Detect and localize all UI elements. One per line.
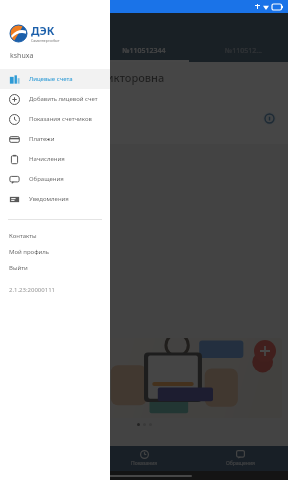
staticText: Самоэнергосбыт — [31, 38, 60, 43]
staticText: Показания счетчиков — [29, 115, 92, 123]
button[interactable]: Выйти — [0, 260, 110, 276]
button[interactable]: Успей оплату — [6, 338, 282, 418]
staticText: Выйти — [9, 264, 28, 272]
staticText: Контакты — [9, 232, 37, 240]
staticText: №110512344 — [122, 46, 166, 56]
button[interactable]: Начисления — [0, 149, 110, 169]
button[interactable]: Обращения — [0, 169, 110, 189]
staticText: Начисления — [29, 155, 65, 163]
button[interactable]: Обращения — [192, 446, 288, 471]
staticText: 2.1.23:20000111 — [9, 286, 56, 294]
staticText: №110512... — [225, 46, 262, 56]
button[interactable]: Добавить лицевой счет — [0, 89, 110, 109]
staticText: ДЭК — [31, 23, 55, 38]
staticText: Обращения — [226, 460, 255, 467]
button[interactable]: Показания — [96, 446, 192, 471]
staticText: Добавить лицевой счет — [29, 95, 98, 103]
staticText: Лицевые счета — [29, 75, 73, 83]
staticText: Уведомления — [29, 195, 69, 203]
staticText: Мой профиль — [9, 248, 50, 256]
button[interactable]: №110512... — [198, 40, 288, 62]
staticText: Лицевой счёт — [10, 94, 57, 104]
button[interactable]: Уведомления — [0, 189, 110, 209]
staticText: Обращения — [29, 175, 64, 183]
staticText: Показания — [131, 460, 158, 467]
button[interactable]: Контакты — [0, 228, 110, 244]
button[interactable]: Добавить — [254, 340, 276, 362]
button[interactable]: Лицевые счета — [0, 69, 110, 89]
button[interactable]: Платежи — [0, 129, 110, 149]
staticText: kshuxa — [10, 51, 34, 61]
button[interactable]: Мой профиль — [0, 244, 110, 260]
staticText: №1105... — [31, 46, 60, 56]
button[interactable]: Показания счетчиков — [0, 109, 110, 129]
button[interactable]: №110512344 — [90, 40, 198, 62]
button[interactable]: №1105... — [0, 40, 90, 62]
staticText: Платежи — [29, 135, 55, 143]
staticText: Иванова Мария Викторовна — [10, 70, 165, 85]
